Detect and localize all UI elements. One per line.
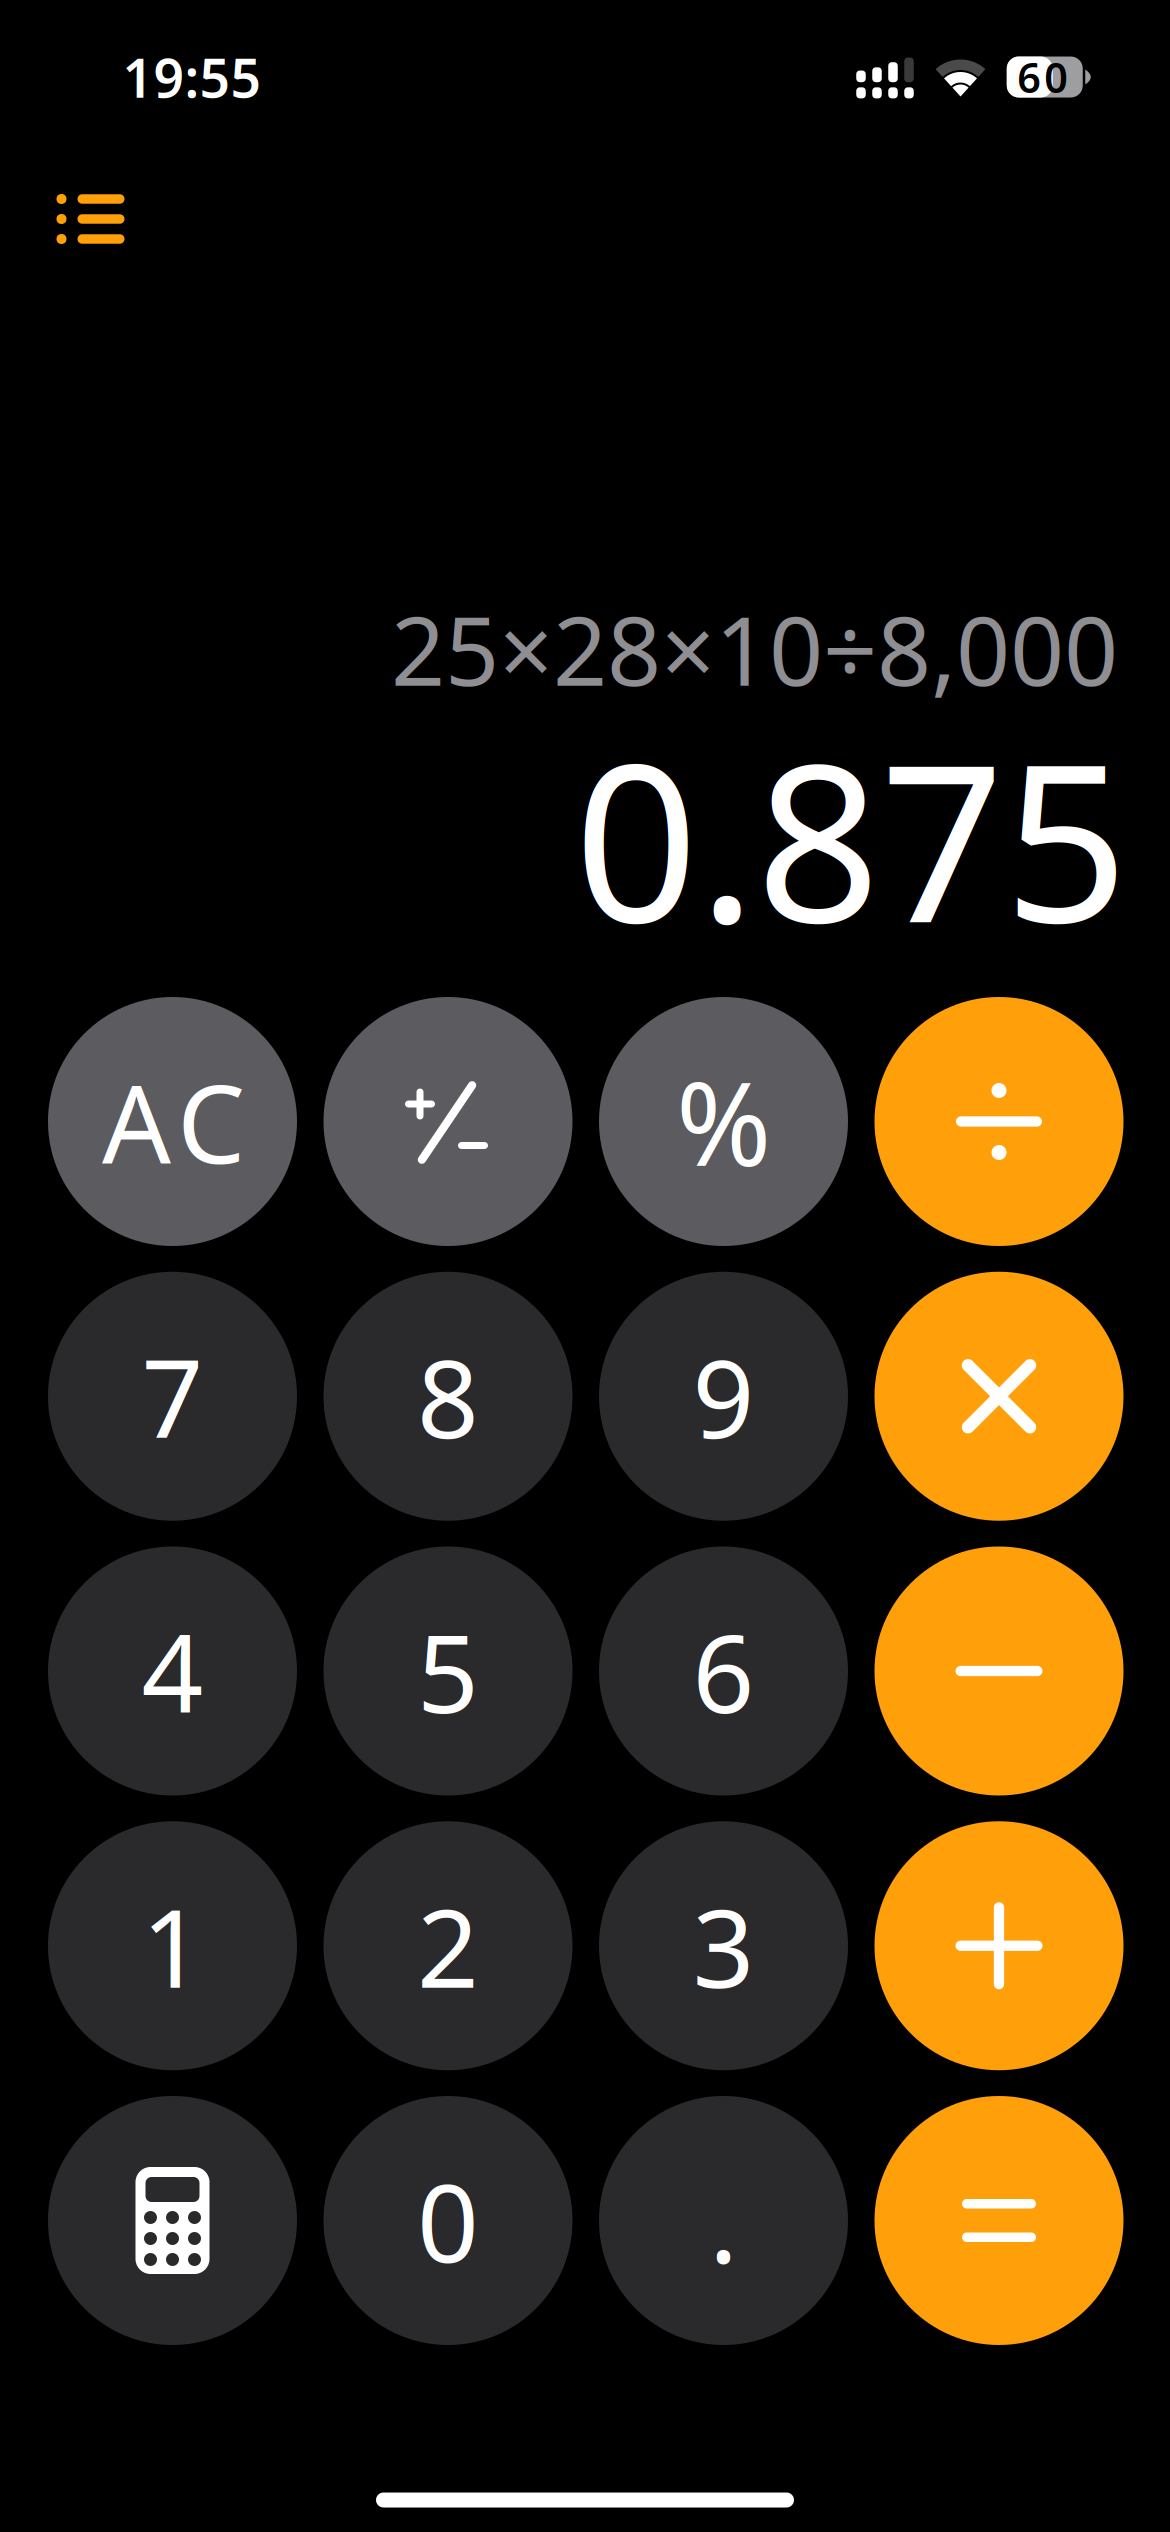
button[interactable]: . xyxy=(599,2096,848,2345)
button[interactable]: 4 xyxy=(48,1546,297,1795)
button[interactable]: 2 xyxy=(323,1821,572,2070)
button[interactable]: % xyxy=(599,997,848,1246)
button[interactable]: Divide xyxy=(874,997,1123,1246)
button[interactable]: Minus xyxy=(874,1546,1123,1795)
button[interactable]: 1 xyxy=(48,1821,297,2070)
button[interactable]: 9 xyxy=(599,1272,848,1521)
staticText: 0 xyxy=(417,2149,479,2292)
button[interactable]: Plus minus xyxy=(323,997,572,1246)
button[interactable]: AC xyxy=(48,997,297,1246)
button[interactable]: 8 xyxy=(323,1272,572,1521)
staticText: 19:55 xyxy=(122,42,261,112)
staticText: 8 xyxy=(417,1324,479,1468)
button[interactable]: Multiply xyxy=(874,1272,1123,1521)
button[interactable]: 3 xyxy=(599,1821,848,2070)
staticText: 4 xyxy=(141,1599,203,1743)
staticText: 0.875 xyxy=(574,694,1128,982)
button[interactable]: 0 xyxy=(323,2096,572,2345)
staticText: 60 xyxy=(1017,50,1068,104)
button[interactable]: 5 xyxy=(323,1546,572,1795)
staticText: 2 xyxy=(417,1874,479,2017)
staticText: 25×28×10÷8,000 xyxy=(391,586,1118,712)
staticText: 9 xyxy=(692,1324,754,1468)
staticText: AC xyxy=(102,1050,245,1193)
button[interactable]: Plus xyxy=(874,1821,1123,2070)
button[interactable]: 7 xyxy=(48,1272,297,1521)
button[interactable]: History xyxy=(36,174,144,264)
staticText: . xyxy=(709,2149,738,2292)
button[interactable]: 6 xyxy=(599,1546,848,1795)
staticText: 3 xyxy=(692,1874,754,2017)
staticText: 7 xyxy=(141,1324,203,1468)
button[interactable]: Calculator xyxy=(48,2096,297,2345)
staticText: % xyxy=(676,1045,771,1198)
button[interactable]: Equals xyxy=(874,2096,1123,2345)
staticText: 6 xyxy=(692,1599,754,1743)
staticText: 5 xyxy=(417,1599,479,1743)
staticText: 1 xyxy=(141,1874,203,2017)
